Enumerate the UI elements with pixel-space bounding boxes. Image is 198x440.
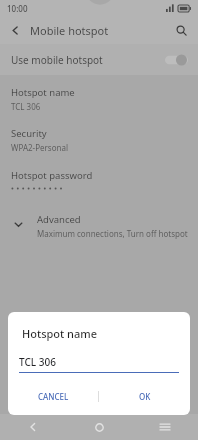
button[interactable]: TCL 306 — [19, 355, 179, 373]
staticText: Hotspot name — [22, 326, 98, 341]
button[interactable]: Back — [7, 22, 23, 38]
button[interactable]: Use mobile hotspot — [0, 44, 198, 75]
staticText: OK — [139, 391, 151, 402]
staticText: WPA2-Personal — [11, 142, 68, 153]
staticText: CANCEL — [38, 391, 69, 402]
staticText: Advanced — [37, 213, 81, 226]
staticText: Maximum connections, Turn off hotspot au… — [37, 228, 188, 239]
button[interactable]: Search — [172, 21, 190, 39]
button[interactable]: Advanced — [0, 191, 198, 239]
staticText: TCL 306 — [19, 355, 56, 369]
button[interactable]: Hotspot password — [0, 153, 198, 191]
button[interactable]: OK — [99, 383, 190, 409]
staticText: Mobile hotspot — [30, 23, 109, 38]
staticText: Security — [11, 127, 47, 140]
button[interactable]: Security — [0, 112, 198, 153]
staticText: TCL 306 — [11, 101, 41, 112]
staticText: Hotspot name — [11, 86, 75, 99]
staticText: 10:00 — [7, 3, 28, 14]
button[interactable]: CANCEL — [8, 383, 98, 409]
button[interactable]: Hotspot name — [0, 75, 198, 112]
button[interactable]: Recent apps — [132, 414, 198, 440]
staticText: Use mobile hotspot — [11, 53, 103, 67]
staticText: Hotspot password — [11, 169, 93, 182]
button[interactable]: Home — [66, 414, 132, 440]
button[interactable]: Back — [0, 414, 66, 440]
